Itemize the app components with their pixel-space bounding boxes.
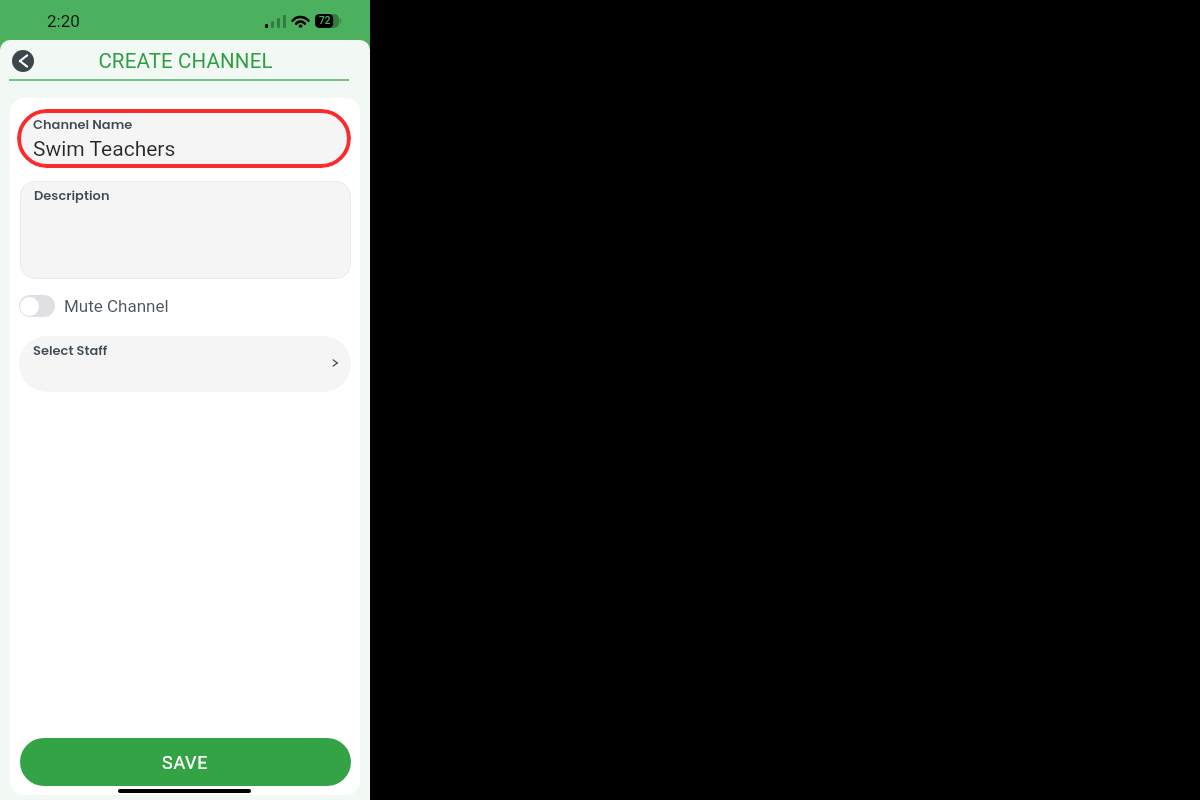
staticText: Select Staff <box>33 341 108 359</box>
button[interactable]: Back <box>12 50 34 72</box>
button[interactable]: Select Staff <box>19 336 351 392</box>
staticText: CREATE CHANNEL <box>98 49 273 73</box>
button[interactable]: SAVE <box>20 738 351 786</box>
staticText: Swim Teachers <box>33 137 176 162</box>
staticText: SAVE <box>162 752 209 773</box>
button[interactable]: Description <box>20 181 351 279</box>
staticText: Description <box>34 186 110 204</box>
staticText: 2:20 <box>47 11 80 31</box>
staticText: Mute Channel <box>64 296 169 316</box>
staticText: 72 <box>319 15 331 27</box>
button[interactable]: Channel Name <box>17 109 351 168</box>
staticText: Channel Name <box>33 115 133 133</box>
button[interactable]: Mute Channel <box>19 293 169 319</box>
